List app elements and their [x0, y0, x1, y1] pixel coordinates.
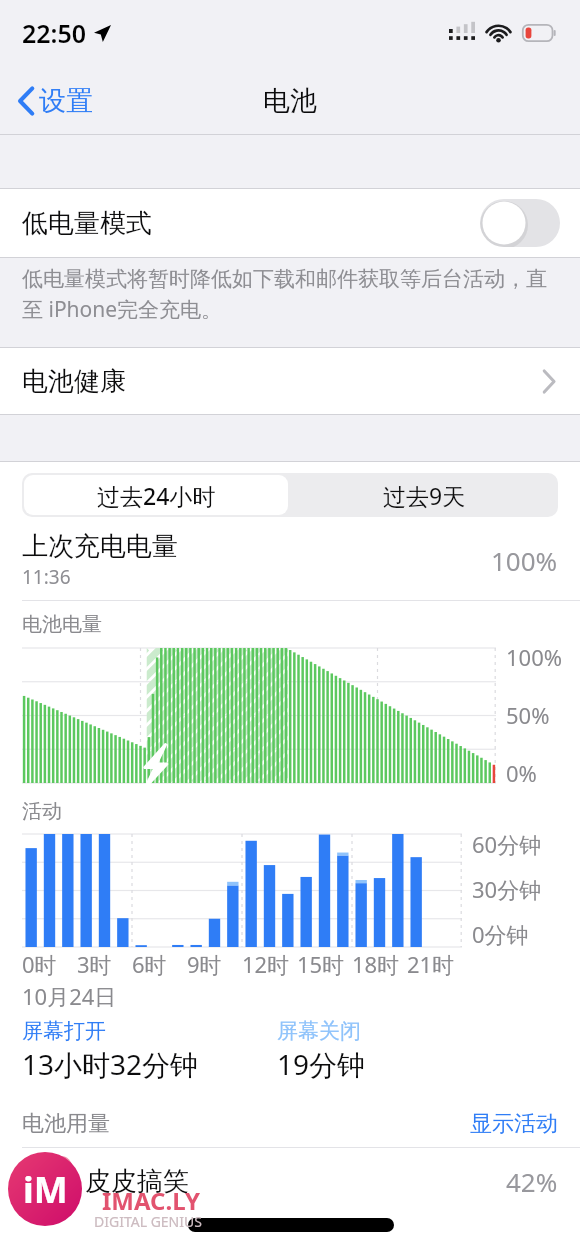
staticText: 0时 — [22, 949, 57, 979]
button[interactable]: 过去9天 — [290, 473, 558, 517]
button[interactable]: 过去24小时 — [24, 475, 288, 515]
staticText: 11:36 — [22, 564, 71, 590]
staticText: 上次充电电量 — [22, 530, 178, 563]
staticText: 13小时32分钟 — [22, 1045, 199, 1083]
staticText: 10月24日 — [22, 981, 117, 1011]
staticText: DIGITAL GENIUS — [94, 1212, 202, 1231]
staticText: 60分钟 — [472, 829, 542, 859]
staticText: 100% — [491, 543, 558, 578]
staticText: 0% — [506, 758, 537, 788]
staticText: 皮皮搞笑 — [85, 1165, 506, 1198]
staticText: 21时 — [407, 949, 455, 979]
button[interactable]: 电池健康 — [0, 347, 580, 415]
button[interactable]: 低电量模式 — [0, 188, 580, 258]
staticText: 低电量模式 — [22, 207, 152, 240]
staticText: 过去9天 — [383, 480, 466, 511]
staticText: 18时 — [352, 949, 400, 979]
staticText: 电池用量 — [22, 1110, 470, 1138]
staticText: 50% — [506, 700, 550, 730]
staticText: 19分钟 — [277, 1045, 366, 1083]
staticText: 显示活动 — [470, 1110, 558, 1138]
staticText: 设置 — [39, 84, 93, 118]
staticText: 活动 — [22, 799, 62, 824]
staticText: 电池健康 — [22, 365, 126, 398]
staticText: 0分钟 — [472, 919, 529, 949]
staticText: 42% — [506, 1164, 558, 1199]
staticText: 22:50 — [22, 16, 87, 50]
button[interactable]: 显示活动 — [470, 1110, 558, 1138]
staticText: 9时 — [187, 949, 222, 979]
staticText: 15时 — [297, 949, 345, 979]
staticText: IMAC.LY — [102, 1184, 200, 1217]
staticText: 3时 — [77, 949, 112, 979]
staticText: 30分钟 — [472, 874, 542, 904]
staticText: 100% — [506, 642, 563, 672]
button[interactable]: 皮皮搞笑 — [22, 1156, 558, 1206]
staticText: 低电量模式将暂时降低如下载和邮件获取等后台活动，直至 iPhone完全充电。 — [22, 266, 558, 323]
staticText: 过去24小时 — [97, 480, 216, 511]
staticText: 6时 — [132, 949, 167, 979]
button[interactable]: 低电量模式 — [480, 199, 560, 247]
button[interactable]: 设置 — [10, 76, 101, 126]
staticText: 12时 — [242, 949, 290, 979]
staticText: iM — [23, 1165, 68, 1214]
staticText: 屏幕关闭 — [277, 1018, 361, 1044]
staticText: 电池 — [263, 84, 317, 118]
staticText: 屏幕打开 — [22, 1018, 106, 1044]
staticText: 电池电量 — [22, 612, 102, 637]
